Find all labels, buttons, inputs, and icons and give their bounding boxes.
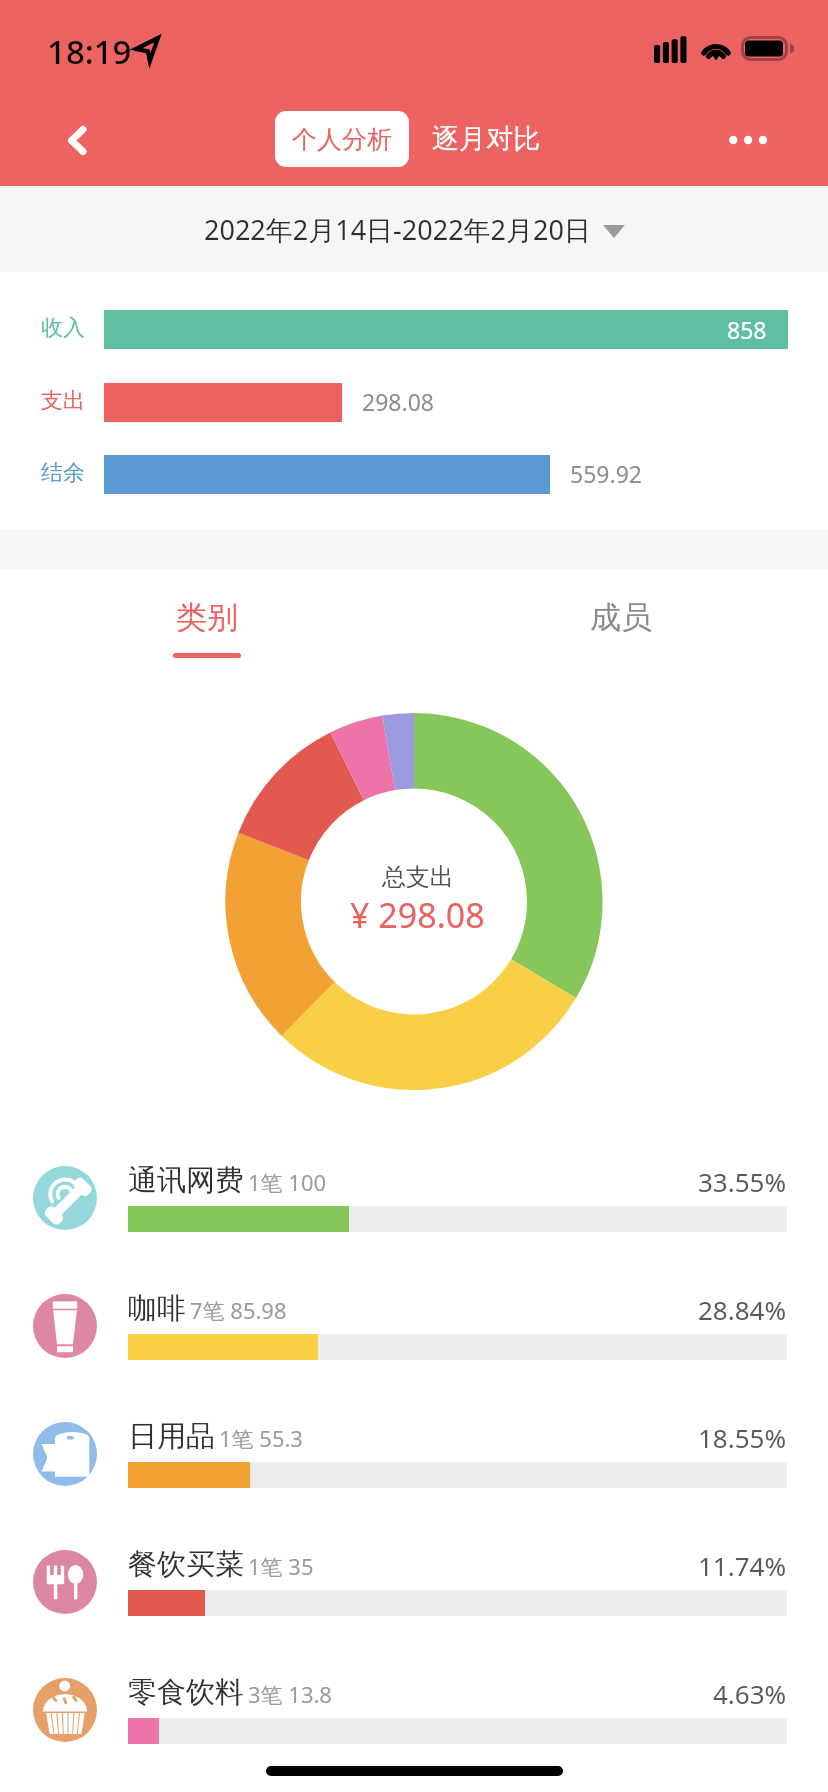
button[interactable]: 2022年2月14日-2022年2月20日 — [0, 186, 828, 272]
staticText: 298.08 — [362, 386, 434, 417]
staticText: 收入 — [41, 314, 85, 342]
button[interactable]: 成员 — [414, 570, 828, 670]
staticText: ¥ 298.08 — [350, 892, 485, 938]
button[interactable]: 通讯网费 — [0, 1134, 828, 1262]
staticText: 日用品 — [128, 1418, 215, 1455]
staticText: 18:19 — [47, 29, 132, 74]
staticText: 逐月对比 — [432, 122, 540, 156]
staticText: 3笔 13.8 — [248, 1679, 332, 1709]
staticText: 成员 — [590, 598, 652, 637]
button[interactable]: 餐饮买菜 — [0, 1518, 828, 1646]
staticText: 1笔 100 — [248, 1167, 327, 1197]
staticText: 类别 — [176, 598, 238, 637]
staticText: 餐饮买菜 — [128, 1546, 244, 1583]
staticText: 4.63% — [713, 1676, 787, 1711]
staticText: 858 — [727, 314, 767, 345]
staticText: 零食饮料 — [128, 1674, 244, 1711]
staticText: 通讯网费 — [128, 1162, 244, 1199]
staticText: 1笔 55.3 — [219, 1423, 303, 1453]
staticText: 28.84% — [698, 1292, 787, 1327]
button[interactable]: 类别 — [0, 570, 414, 670]
button[interactable]: 咖啡 — [0, 1262, 828, 1390]
staticText: 咖啡 — [128, 1290, 186, 1327]
staticText: 18.55% — [698, 1420, 787, 1455]
staticText: 559.92 — [570, 458, 642, 489]
staticText: 2022年2月14日-2022年2月20日 — [204, 211, 591, 248]
staticText: 支出 — [41, 387, 85, 415]
button[interactable]: 个人分析 — [275, 111, 409, 167]
staticText: 7笔 85.98 — [190, 1295, 287, 1325]
button[interactable]: Back — [40, 104, 112, 176]
button[interactable]: 零食饮料 — [0, 1646, 828, 1774]
staticText: 11.74% — [698, 1548, 787, 1583]
staticText: 个人分析 — [292, 124, 392, 155]
button[interactable]: 日用品 — [0, 1390, 828, 1518]
staticText: 33.55% — [698, 1164, 787, 1199]
button[interactable]: 逐月对比 — [420, 111, 552, 167]
staticText: 结余 — [41, 459, 85, 487]
staticText: 1笔 35 — [248, 1551, 314, 1581]
button[interactable]: More options — [712, 104, 784, 176]
staticText: 总支出 — [382, 862, 454, 892]
